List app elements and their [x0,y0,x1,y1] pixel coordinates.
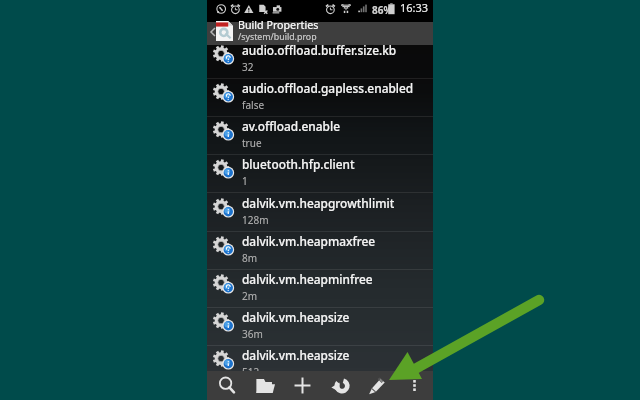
button[interactable]: dalvik.vm.heapmaxfree [207,232,433,270]
button[interactable]: Refresh [321,371,359,400]
button[interactable]: dalvik.vm.heapminfree [207,270,433,308]
button[interactable]: Navigate up [209,22,223,45]
staticText: dalvik.vm.heapsize [242,309,350,325]
staticText: 512 [242,365,260,379]
button[interactable]: bluetooth.hfp.client [207,155,433,193]
staticText: dalvik.vm.heapminfree [242,271,373,287]
button[interactable]: dalvik.vm.heapgrowthlimit [207,193,433,232]
button[interactable]: dalvik.vm.heapsize [207,346,433,384]
staticText: /system/build.prop [238,31,317,43]
button[interactable]: Add property [283,371,321,400]
button[interactable]: Edit [358,371,396,400]
staticText: 2m [242,289,258,303]
button[interactable]: av.offload.enable [207,117,433,155]
button[interactable]: audio.offload.buffer.size.kb [207,45,433,79]
staticText: 36m [242,327,263,341]
staticText: dalvik.vm.heapmaxfree [242,233,376,249]
staticText: audio.offload.gapless.enabled [242,80,414,96]
staticText: 32 [242,60,254,74]
button[interactable]: audio.offload.gapless.enabled [207,79,433,117]
staticText: dalvik.vm.heapsize [242,347,350,363]
staticText: 128m [242,213,269,227]
staticText: 8m [242,251,258,265]
button[interactable]: More options [395,371,433,400]
staticText: audio.offload.buffer.size.kb [242,42,397,58]
staticText: dalvik.vm.heapgrowthlimit [242,195,395,211]
staticText: 86% [372,3,393,17]
button[interactable]: dalvik.vm.heapsize [207,308,433,346]
staticText: 1 [242,174,248,188]
staticText: bluetooth.hfp.client [242,156,355,172]
staticText: Build Properties [238,18,319,33]
staticText: false [242,98,265,112]
staticText: av.offload.enable [242,118,340,134]
button[interactable]: Open file [246,371,284,400]
button[interactable]: Search [208,371,246,400]
staticText: 16:33 [400,0,429,15]
staticText: true [242,136,262,150]
